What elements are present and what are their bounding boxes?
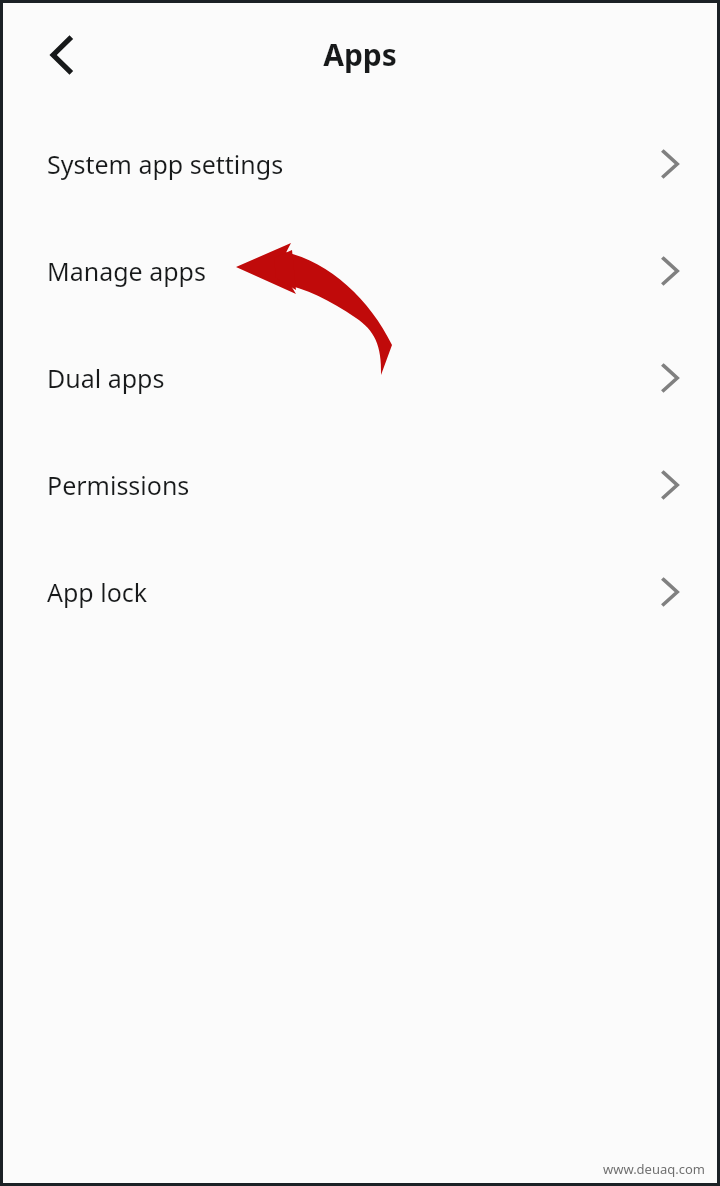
- staticText: www.deuaq.com: [603, 1160, 706, 1178]
- staticText: Dual apps: [47, 361, 165, 395]
- staticText: Manage apps: [47, 254, 206, 288]
- button[interactable]: Dual apps: [0, 324, 720, 431]
- staticText: Apps: [323, 34, 397, 75]
- staticText: App lock: [47, 575, 148, 609]
- button[interactable]: Permissions: [0, 431, 720, 538]
- button[interactable]: System app settings: [0, 110, 720, 217]
- staticText: System app settings: [47, 147, 284, 181]
- button[interactable]: App lock: [0, 538, 720, 645]
- staticText: Permissions: [47, 468, 190, 502]
- button[interactable]: Manage apps: [0, 217, 720, 324]
- button[interactable]: Back: [22, 15, 102, 95]
